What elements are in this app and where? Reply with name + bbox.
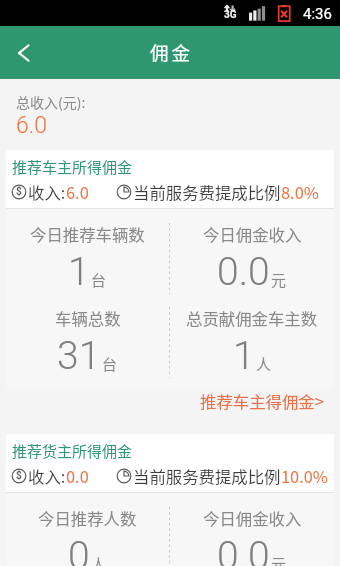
staticText: 0.0 [217, 533, 270, 566]
staticText: 1 [68, 249, 90, 295]
staticText: $ [16, 470, 22, 482]
staticText: 元 [271, 269, 287, 291]
staticText: 0.0 [66, 464, 89, 488]
staticText: 当前服务费提成比例 [133, 464, 281, 488]
staticText: 推荐货主所得佣金 [12, 440, 133, 462]
button[interactable]: 推荐货主所得佣金 [6, 434, 334, 566]
staticText: 31 [57, 333, 101, 379]
button[interactable]: Back [0, 26, 48, 79]
staticText: 6.0 [66, 180, 89, 204]
staticText: 元 [271, 553, 287, 566]
staticText: 总贡献佣金车主数 [186, 306, 318, 330]
staticText: 8.0% [281, 180, 319, 204]
staticText: 总收入(元): [16, 92, 86, 112]
button[interactable]: 推荐车主所得佣金 [6, 150, 334, 389]
staticText: $ [16, 186, 22, 198]
staticText: 4:36 [303, 5, 332, 23]
staticText: 推荐车主所得佣金 [12, 156, 133, 178]
staticText: 今日佣金收入 [203, 506, 302, 530]
staticText: 6.0 [16, 112, 48, 139]
staticText: 今日佣金收入 [203, 222, 302, 246]
staticText: 当前服务费提成比例 [133, 180, 281, 204]
staticText: 车辆总数 [55, 306, 121, 330]
staticText: 1 [233, 333, 255, 379]
staticText: 10.0% [281, 464, 328, 488]
staticText: 0 [68, 533, 90, 566]
staticText: 3G [224, 9, 237, 21]
button[interactable]: 推荐车主得佣金> [196, 385, 328, 417]
staticText: 收入: [28, 180, 66, 204]
staticText: 人 [91, 553, 107, 566]
staticText: 台 [102, 353, 118, 375]
staticText: 收入: [28, 464, 66, 488]
staticText: 推荐车主得佣金> [200, 389, 324, 413]
staticText: 今日推荐人数 [38, 506, 137, 530]
staticText: 人 [256, 353, 272, 375]
staticText: 台 [91, 269, 107, 291]
staticText: 佣金 [150, 39, 194, 66]
staticText: 今日推荐车辆数 [30, 222, 145, 246]
staticText: 0.0 [217, 249, 270, 295]
